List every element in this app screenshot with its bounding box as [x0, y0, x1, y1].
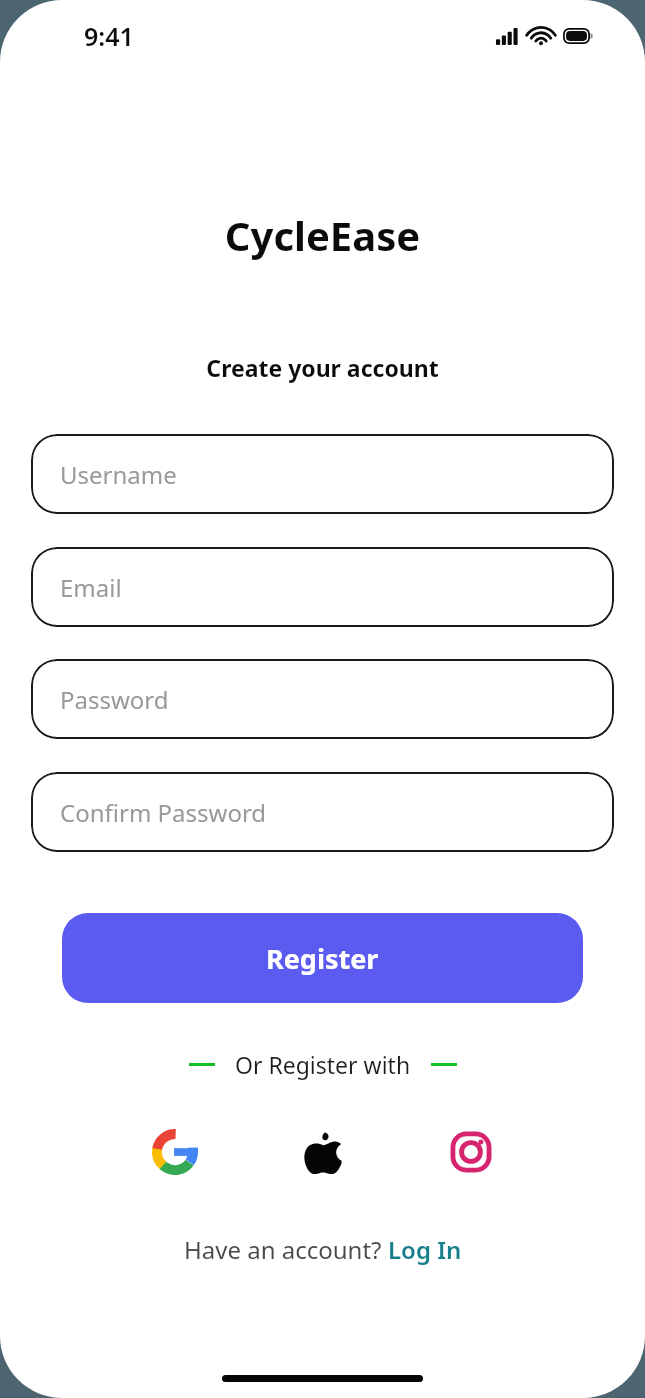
- button[interactable]: Register with Google: [138, 1115, 212, 1189]
- staticText: Email: [60, 571, 122, 604]
- button[interactable]: Register: [62, 913, 583, 1003]
- button[interactable]: Log In: [388, 1233, 462, 1266]
- button[interactable]: Email: [31, 547, 614, 627]
- staticText: Have an account?: [184, 1233, 388, 1266]
- button[interactable]: Username: [31, 434, 614, 514]
- button[interactable]: Register with Apple: [286, 1115, 360, 1189]
- staticText: Log In: [388, 1233, 462, 1266]
- staticText: Register: [266, 940, 379, 977]
- button[interactable]: Register with Instagram: [434, 1115, 508, 1189]
- staticText: 9:41: [84, 19, 134, 53]
- staticText: CycleEase: [0, 208, 645, 262]
- button[interactable]: Password: [31, 659, 614, 739]
- button[interactable]: Confirm Password: [31, 772, 614, 852]
- staticText: Username: [60, 458, 177, 491]
- staticText: Create your account: [0, 352, 645, 383]
- staticText: Confirm Password: [60, 796, 267, 829]
- staticText: Password: [60, 683, 169, 716]
- staticText: Or Register with: [235, 1049, 411, 1080]
